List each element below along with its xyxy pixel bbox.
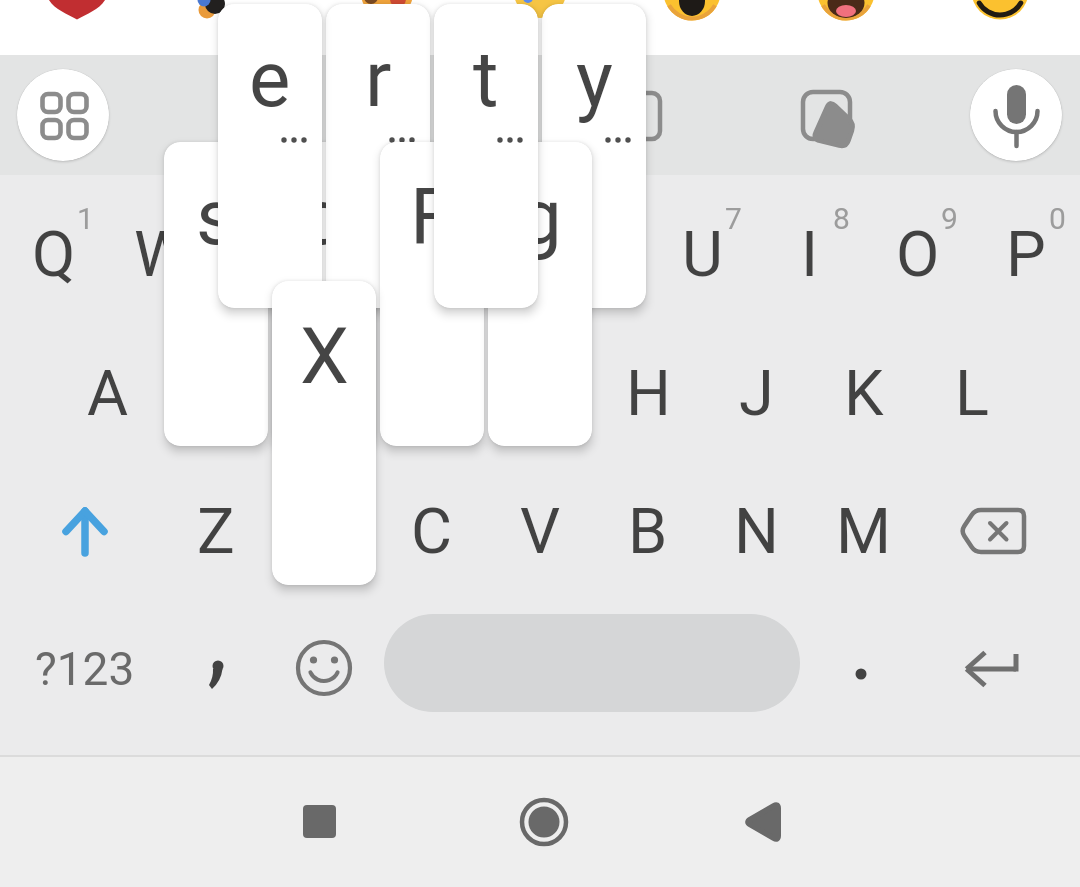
staticText: P — [1006, 218, 1046, 292]
button[interactable] — [0, 0, 154, 55]
button[interactable]: M — [810, 463, 918, 601]
button[interactable]: F — [378, 325, 486, 463]
staticText: s — [196, 172, 237, 262]
button[interactable] — [770, 0, 924, 55]
staticText: U — [682, 218, 723, 292]
button[interactable]: B — [594, 463, 702, 601]
staticText: d — [302, 172, 346, 262]
staticText: 7 — [725, 201, 742, 236]
button[interactable]: R — [324, 186, 432, 324]
staticText: V — [520, 495, 561, 569]
staticText: M — [836, 495, 892, 569]
staticText: C — [411, 495, 453, 569]
button[interactable] — [924, 0, 1078, 55]
staticText: y — [576, 34, 613, 124]
button[interactable] — [17, 69, 109, 161]
button[interactable]: A — [54, 325, 162, 463]
button[interactable]: J — [702, 325, 810, 463]
button[interactable] — [154, 0, 308, 55]
staticText: L — [955, 357, 989, 431]
button[interactable] — [10, 600, 160, 738]
staticText: O — [896, 218, 940, 292]
staticText: K — [844, 357, 884, 431]
staticText: N — [734, 495, 779, 569]
staticText: 9 — [941, 201, 958, 236]
staticText: Z — [197, 495, 235, 569]
button[interactable]: D — [270, 325, 378, 463]
button[interactable] — [920, 600, 1070, 738]
button[interactable]: T — [432, 186, 540, 324]
button[interactable]: V — [486, 463, 594, 601]
button[interactable]: X — [270, 463, 378, 601]
button[interactable]: K — [810, 325, 918, 463]
button[interactable] — [484, 765, 604, 880]
button[interactable] — [920, 463, 1070, 601]
staticText: J — [739, 357, 774, 431]
button[interactable]: O — [864, 186, 972, 324]
staticText: t — [473, 34, 499, 124]
button[interactable]: C — [378, 463, 486, 601]
staticText: 1 — [77, 201, 94, 236]
staticText: Y — [575, 218, 613, 292]
button[interactable]: S — [162, 325, 270, 463]
staticText: Q — [32, 218, 76, 292]
staticText: ?123 — [35, 642, 135, 696]
button[interactable]: P — [972, 186, 1080, 324]
button[interactable] — [272, 600, 380, 738]
button[interactable]: H — [594, 325, 702, 463]
staticText: A — [87, 357, 129, 431]
staticText: W — [134, 218, 190, 292]
button[interactable]: U — [648, 186, 756, 324]
staticText: I — [801, 218, 819, 292]
button[interactable] — [260, 765, 380, 880]
staticText: D — [303, 357, 345, 431]
button[interactable]: W — [108, 186, 216, 324]
button[interactable]: G — [486, 325, 594, 463]
button[interactable] — [970, 69, 1062, 161]
staticText: X — [300, 311, 349, 401]
staticText: 0 — [1049, 201, 1066, 236]
button[interactable]: L — [918, 325, 1026, 463]
staticText: e — [249, 34, 291, 124]
staticText: 8 — [833, 201, 850, 236]
staticText: H — [626, 357, 671, 431]
button[interactable] — [616, 0, 770, 55]
staticText: 2 — [185, 201, 202, 236]
staticText: B — [628, 495, 668, 569]
button[interactable] — [164, 600, 272, 738]
button[interactable]: Y — [540, 186, 648, 324]
staticText: r — [365, 34, 392, 124]
button[interactable]: Z — [162, 463, 270, 601]
button[interactable]: N — [702, 463, 810, 601]
button[interactable]: I — [756, 186, 864, 324]
button[interactable] — [308, 0, 462, 55]
button[interactable]: Q — [0, 186, 108, 324]
button[interactable] — [462, 0, 616, 55]
staticText: R — [359, 218, 398, 292]
staticText: 4 — [401, 201, 418, 236]
staticText: F — [410, 172, 454, 262]
button[interactable] — [384, 614, 800, 712]
button[interactable] — [806, 600, 914, 738]
button[interactable] — [10, 463, 160, 601]
button[interactable]: E — [216, 186, 324, 324]
staticText: g — [518, 172, 562, 262]
button[interactable] — [702, 765, 822, 880]
